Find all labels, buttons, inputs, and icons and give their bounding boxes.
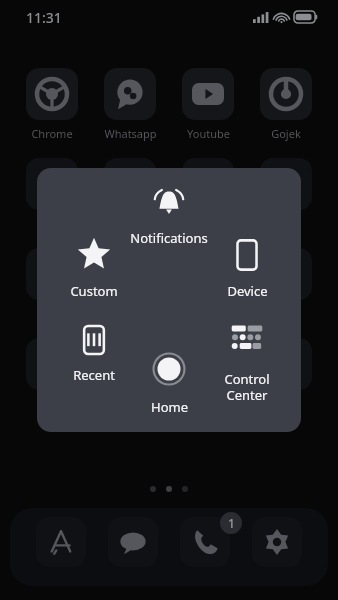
button[interactable]: C [19,338,85,411]
button[interactable]: Notifications [121,182,217,259]
button[interactable] [253,338,319,390]
staticText: Device [227,282,268,300]
button[interactable]: Settings [252,517,302,567]
button[interactable]: Control Center [199,317,295,400]
staticText: Control Center [224,370,270,400]
button[interactable] [175,158,241,210]
button[interactable]: In [19,248,85,321]
button[interactable]: Home [121,349,217,428]
button[interactable]: Recent [46,320,142,396]
staticText: Youtube [187,126,230,141]
staticText: Notifications [130,229,208,247]
button[interactable]: Custom [46,234,142,312]
button[interactable] [97,158,163,210]
button[interactable]: er [253,158,319,231]
staticText: 1 [228,515,235,531]
staticText: Gojek [271,126,301,141]
button[interactable]: Messages [108,517,158,567]
staticText: 11:31 [26,8,62,27]
button[interactable]: Chrome [19,68,85,141]
staticText: Custom [70,282,118,300]
staticText: Recent [73,366,115,384]
button[interactable]: Youtube [175,68,241,141]
button[interactable]: Whatsapp [97,68,163,141]
staticText: Chrome [31,126,73,141]
staticText: Whatsapp [104,126,157,141]
button[interactable]: x [253,248,319,321]
button[interactable]: Device [199,235,295,312]
button[interactable]: App Store [36,517,86,567]
button[interactable]: Gojek [253,68,319,141]
button[interactable]: C [19,158,85,231]
button[interactable]: Phone [180,517,230,567]
staticText: Home [151,398,188,416]
